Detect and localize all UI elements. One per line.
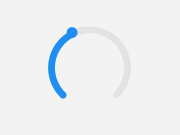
button[interactable]: Progress [0,0,180,135]
